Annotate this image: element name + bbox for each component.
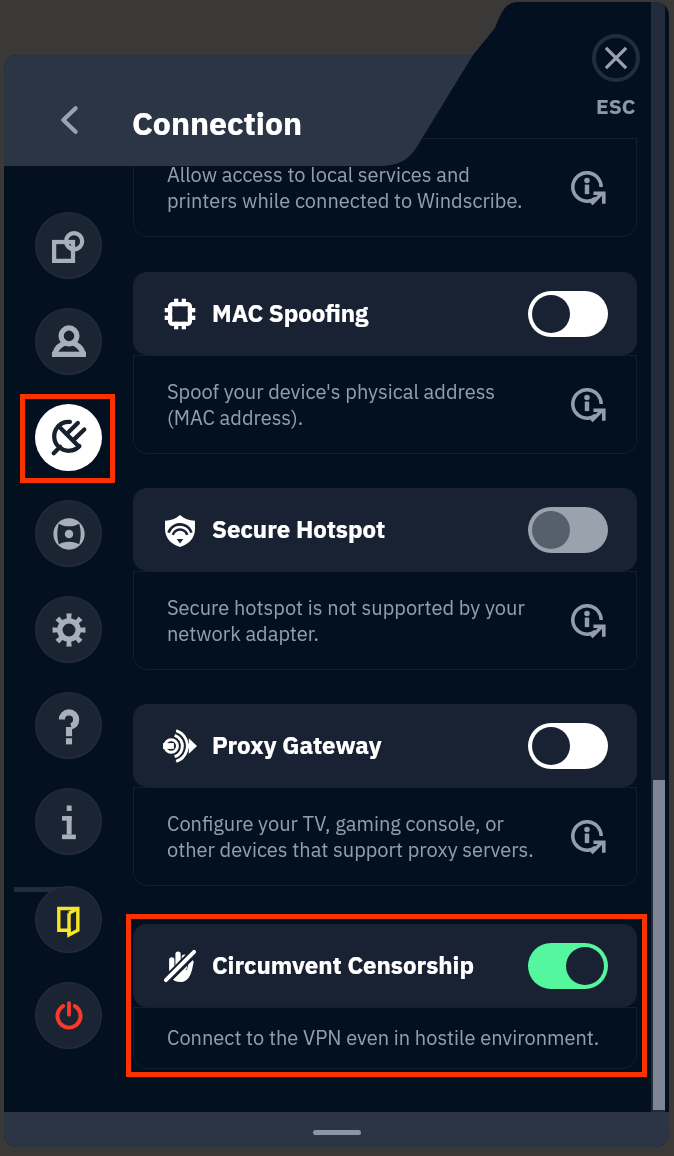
staticText: Secure Hotspot [212,512,386,548]
staticText: Proxy Gateway [212,728,382,764]
button[interactable]: Robert [35,500,102,567]
button[interactable]: Toggle [528,507,608,553]
button[interactable]: Circumvent Censorship [133,924,637,1007]
button[interactable]: Close [574,34,658,123]
button[interactable]: More info [571,820,605,854]
button[interactable]: Toggle [528,723,608,769]
button[interactable]: Secure hotspot is not supported by your … [133,571,637,670]
staticText: Circumvent Censorship [212,948,475,984]
button[interactable]: More info [571,171,605,205]
staticText: Configure your TV, gaming console, or ot… [167,809,627,865]
staticText: Allow access to local services and print… [167,160,627,216]
button[interactable]: About [35,788,102,855]
button[interactable]: Secure Hotspot [133,488,637,571]
button[interactable]: Back [42,92,98,148]
button[interactable]: Help [35,692,102,759]
button[interactable]: Spoof your device's physical address (MA… [133,355,637,454]
button[interactable]: Toggle [528,943,608,989]
staticText: Connect to the VPN even in hostile envir… [167,1023,627,1053]
button[interactable]: General settings [35,596,102,663]
button[interactable]: Proxy Gateway [133,704,637,787]
button[interactable]: MAC Spoofing [133,272,637,355]
button[interactable]: Account [35,308,102,375]
button[interactable]: Connection [35,404,102,471]
button[interactable]: More info [571,388,605,422]
button[interactable]: More info [571,604,605,638]
staticText: Spoof your device's physical address (MA… [167,377,627,433]
staticText: MAC Spoofing [212,296,369,332]
staticText: ESC [596,91,636,123]
button[interactable]: Logout [35,886,102,953]
staticText: Connection [132,100,303,148]
button[interactable]: Network options [35,212,102,279]
button[interactable]: Quit [35,982,102,1049]
staticText: Secure hotspot is not supported by your … [167,593,627,649]
button[interactable]: Toggle [528,291,608,337]
button[interactable]: Configure your TV, gaming console, or ot… [133,787,637,886]
button[interactable]: Connect to the VPN even in hostile envir… [133,1007,637,1069]
button[interactable]: Allow access to local services and print… [133,138,637,237]
